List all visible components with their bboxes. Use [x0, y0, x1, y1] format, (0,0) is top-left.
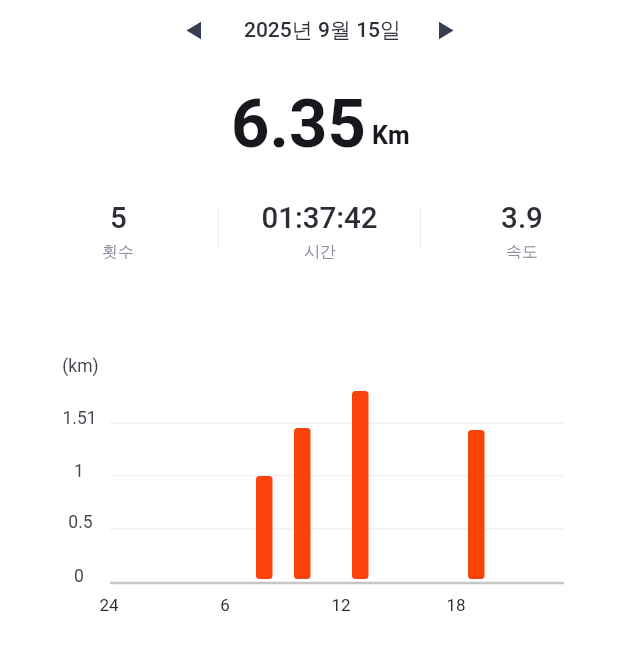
staticText: (km)	[62, 356, 99, 377]
staticText: 0.5	[68, 512, 93, 533]
button[interactable]: Next day	[425, 10, 465, 50]
staticText: 시간	[304, 242, 336, 262]
staticText: 2025년 9월 15일	[244, 17, 402, 43]
button[interactable]: 2025년 9월 15일	[244, 10, 402, 50]
staticText: 0	[74, 566, 84, 587]
staticText: 5	[110, 201, 127, 236]
staticText: 6.35	[231, 85, 366, 149]
staticText: Km	[372, 121, 410, 150]
button[interactable]: 01:37:42	[219, 201, 420, 262]
button[interactable]: 5	[18, 201, 218, 262]
button[interactable]: 3.9	[421, 201, 622, 262]
staticText: 24	[99, 595, 119, 615]
staticText: 1.51	[62, 408, 97, 429]
button[interactable]: Previous day	[174, 10, 214, 50]
staticText: 1	[74, 461, 84, 482]
staticText: 속도	[506, 242, 538, 262]
staticText: 12	[331, 595, 351, 615]
staticText: 01:37:42	[261, 201, 378, 236]
staticText: 18	[446, 595, 466, 615]
staticText: 6	[220, 595, 230, 615]
staticText: 3.9	[501, 201, 543, 236]
staticText: 횟수	[102, 242, 134, 262]
